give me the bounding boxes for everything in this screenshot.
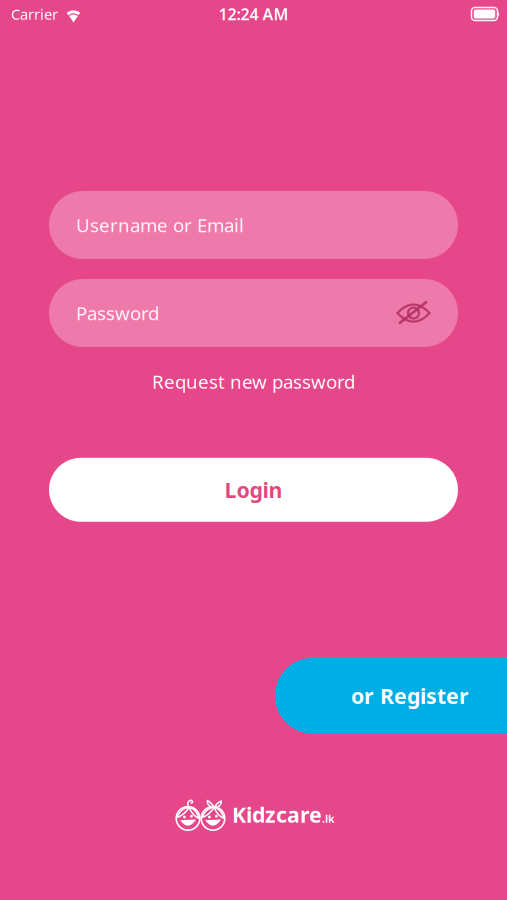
- staticText: Kidzcare: [232, 800, 322, 829]
- button[interactable]: Request new password: [140, 362, 367, 401]
- staticText: Password: [76, 301, 159, 325]
- staticText: Carrier: [11, 4, 58, 24]
- staticText: 12:24 AM: [218, 3, 288, 25]
- button[interactable]: Username or Email: [49, 191, 458, 259]
- button[interactable]: or Register: [275, 658, 507, 734]
- staticText: or Register: [351, 682, 469, 710]
- staticText: Username or Email: [76, 213, 244, 237]
- staticText: Request new password: [152, 369, 355, 394]
- button[interactable]: Password: [49, 279, 458, 347]
- button[interactable]: Login: [49, 458, 458, 522]
- staticText: .lk: [322, 811, 335, 826]
- button[interactable]: Show password: [385, 285, 442, 340]
- staticText: Login: [224, 476, 282, 504]
